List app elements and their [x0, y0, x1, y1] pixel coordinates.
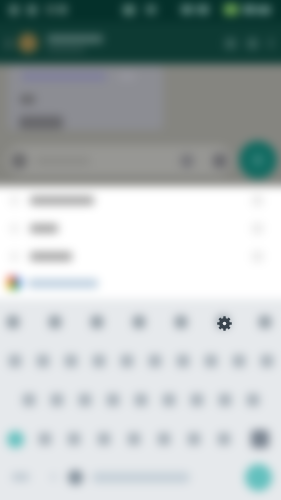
- button[interactable]: Keyboard tool: [81, 306, 113, 338]
- button[interactable]: [183, 382, 211, 418]
- button[interactable]: [211, 382, 239, 418]
- button[interactable]: Shift: [0, 421, 30, 457]
- button[interactable]: Voice message: [239, 141, 277, 179]
- button[interactable]: Keyboard tool: [0, 306, 29, 338]
- button[interactable]: [119, 421, 149, 457]
- button[interactable]: [169, 343, 197, 379]
- button[interactable]: [239, 382, 267, 418]
- button[interactable]: [59, 421, 89, 457]
- button[interactable]: Voice input: [68, 470, 83, 485]
- button[interactable]: Contact avatar: [18, 33, 38, 53]
- button[interactable]: [9, 242, 263, 270]
- button[interactable]: [29, 343, 57, 379]
- button[interactable]: Settings: [209, 308, 240, 339]
- button[interactable]: [9, 214, 263, 242]
- button[interactable]: [209, 421, 239, 457]
- other: Attach: [180, 154, 194, 168]
- button[interactable]: [7, 270, 281, 296]
- other: Emoji: [11, 153, 27, 169]
- button[interactable]: [225, 343, 253, 379]
- button[interactable]: Keyboard tool: [249, 306, 281, 338]
- button[interactable]: [253, 343, 281, 379]
- button[interactable]: [113, 343, 141, 379]
- button[interactable]: Enter: [245, 464, 272, 491]
- button[interactable]: [0, 343, 29, 379]
- button[interactable]: [89, 421, 119, 457]
- button[interactable]: [99, 382, 127, 418]
- button[interactable]: [197, 343, 225, 379]
- button[interactable]: Space: [92, 472, 190, 483]
- button[interactable]: Keyboard tool: [123, 306, 155, 338]
- button[interactable]: [9, 186, 263, 214]
- button[interactable]: [71, 382, 99, 418]
- button[interactable]: [30, 421, 59, 457]
- other: Camera: [213, 154, 227, 168]
- button[interactable]: [155, 382, 183, 418]
- button[interactable]: [14, 382, 43, 418]
- button[interactable]: Backspace: [239, 421, 281, 457]
- button[interactable]: [43, 382, 71, 418]
- button[interactable]: Emoji: [6, 145, 232, 176]
- button[interactable]: [141, 343, 169, 379]
- button[interactable]: Keyboard tool: [165, 306, 197, 338]
- button[interactable]: [127, 382, 155, 418]
- button[interactable]: [179, 421, 209, 457]
- button[interactable]: Keyboard tool: [39, 306, 71, 338]
- button[interactable]: [85, 343, 113, 379]
- button[interactable]: [149, 421, 179, 457]
- button[interactable]: [57, 343, 85, 379]
- button[interactable]: Keyboard tool: [207, 306, 239, 338]
